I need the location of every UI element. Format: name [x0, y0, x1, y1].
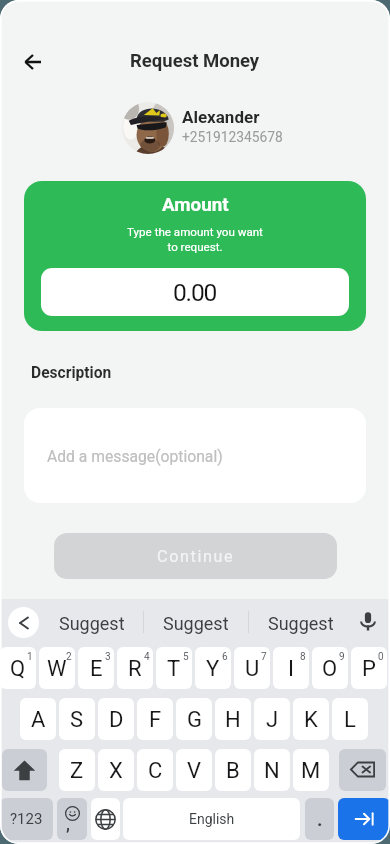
- staticText: B: [226, 758, 240, 784]
- staticText: A: [31, 707, 46, 733]
- button[interactable]: B: [215, 749, 251, 791]
- staticText: Alexander: [182, 107, 260, 127]
- staticText: Z: [70, 758, 84, 784]
- button[interactable]: 0.00: [41, 268, 349, 316]
- staticText: Suggest: [59, 613, 125, 634]
- staticText: 0: [378, 651, 384, 663]
- button[interactable]: L: [332, 698, 368, 740]
- button[interactable]: Y: [195, 647, 231, 689]
- button[interactable]: Shift: [2, 749, 47, 791]
- staticText: English: [189, 811, 235, 827]
- staticText: J: [266, 707, 279, 733]
- staticText: M: [301, 758, 321, 784]
- staticText: Type the amount you want to request.: [24, 225, 366, 254]
- button[interactable]: Z: [59, 749, 95, 791]
- staticText: W: [47, 656, 67, 682]
- button[interactable]: P: [351, 647, 387, 689]
- staticText: Suggest: [268, 613, 334, 634]
- staticText: ?123: [10, 810, 43, 828]
- button[interactable]: ?123: [0, 798, 53, 840]
- staticText: N: [264, 758, 280, 784]
- staticText: C: [148, 758, 163, 784]
- button[interactable]: Suggest: [156, 603, 236, 643]
- button[interactable]: R: [117, 647, 153, 689]
- staticText: I: [288, 656, 294, 682]
- button[interactable]: V: [176, 749, 212, 791]
- button[interactable]: F: [137, 698, 173, 740]
- staticText: L: [344, 707, 356, 733]
- button[interactable]: A: [20, 698, 56, 740]
- staticText: G: [187, 707, 202, 733]
- staticText: U: [245, 656, 260, 682]
- staticText: Continue: [157, 547, 235, 566]
- staticText: T: [167, 656, 181, 682]
- staticText: D: [109, 707, 124, 733]
- staticText: ,: [66, 815, 70, 834]
- staticText: S: [70, 707, 84, 733]
- staticText: 7: [261, 651, 267, 663]
- staticText: P: [362, 656, 376, 682]
- button[interactable]: N: [254, 749, 290, 791]
- button[interactable]: S: [59, 698, 95, 740]
- button[interactable]: C: [137, 749, 173, 791]
- button[interactable]: M: [293, 749, 329, 791]
- staticText: 4: [144, 651, 150, 663]
- staticText: 3: [105, 651, 111, 663]
- staticText: Y: [206, 656, 220, 682]
- staticText: 5: [183, 651, 189, 663]
- button[interactable]: O: [312, 647, 348, 689]
- button[interactable]: T: [156, 647, 192, 689]
- button[interactable]: .: [305, 798, 334, 840]
- button[interactable]: U: [234, 647, 270, 689]
- button[interactable]: G: [176, 698, 212, 740]
- button[interactable]: I: [273, 647, 309, 689]
- button[interactable]: K: [293, 698, 329, 740]
- staticText: E: [90, 656, 103, 682]
- staticText: Description: [31, 364, 112, 382]
- staticText: 0.00: [173, 278, 217, 307]
- staticText: .: [317, 808, 323, 830]
- button[interactable]: Continue: [54, 533, 337, 579]
- staticText: Suggest: [163, 613, 229, 634]
- button[interactable]: English: [123, 798, 300, 840]
- staticText: 8: [300, 651, 306, 663]
- staticText: H: [225, 707, 241, 733]
- button[interactable]: Add a message(optional): [24, 408, 366, 503]
- button[interactable]: W: [39, 647, 75, 689]
- button[interactable]: Change keyboard language: [91, 798, 120, 840]
- staticText: Q: [10, 656, 26, 682]
- staticText: 9: [339, 651, 345, 663]
- staticText: V: [187, 758, 202, 784]
- staticText: +251912345678: [182, 129, 283, 145]
- staticText: 1: [27, 651, 33, 663]
- button[interactable]: E: [78, 647, 114, 689]
- staticText: F: [149, 707, 162, 733]
- button[interactable]: D: [98, 698, 134, 740]
- staticText: Add a message(optional): [47, 447, 223, 465]
- staticText: Request Money: [130, 50, 260, 72]
- staticText: 2: [66, 651, 72, 663]
- staticText: R: [128, 656, 142, 682]
- button[interactable]: Emoji: [57, 798, 87, 840]
- button[interactable]: H: [215, 698, 251, 740]
- button[interactable]: Previous suggestions: [8, 607, 39, 638]
- staticText: 6: [222, 651, 228, 663]
- button[interactable]: Suggest: [52, 603, 132, 643]
- button[interactable]: Enter: [338, 798, 390, 840]
- staticText: O: [322, 656, 338, 682]
- button[interactable]: Voice input: [353, 606, 383, 636]
- staticText: Amount: [162, 194, 229, 216]
- staticText: X: [109, 758, 123, 784]
- button[interactable]: X: [98, 749, 134, 791]
- button[interactable]: Back: [17, 46, 49, 78]
- button[interactable]: J: [254, 698, 290, 740]
- button[interactable]: Suggest: [261, 603, 341, 643]
- staticText: K: [304, 707, 318, 733]
- button[interactable]: Backspace: [339, 749, 386, 791]
- button[interactable]: Q: [0, 647, 36, 689]
